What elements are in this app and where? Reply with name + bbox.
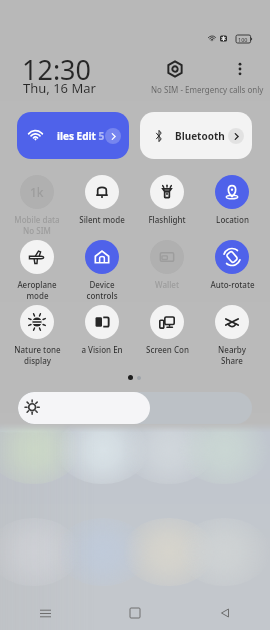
button[interactable]: Wallet: [135, 240, 199, 290]
staticText: Device: [89, 279, 115, 290]
staticText: controls: [86, 290, 118, 301]
staticText: 1k: [30, 184, 44, 200]
button[interactable]: Settings: [163, 57, 187, 81]
staticText: 100: [238, 36, 248, 43]
button[interactable]: Nearby: [200, 305, 264, 366]
staticText: Flashlight: [148, 214, 186, 225]
staticText: 5: [96, 129, 105, 143]
button[interactable]: Recents: [0, 596, 90, 630]
button[interactable]: Flashlight: [135, 175, 199, 225]
staticText: Mobile data: [14, 214, 60, 225]
button[interactable]: iles Edit: [17, 112, 129, 159]
staticText: No SIM - Emergency calls only: [151, 84, 264, 95]
button[interactable]: Silent mode: [70, 175, 134, 225]
button[interactable]: Aeroplane: [5, 240, 69, 301]
button[interactable]: Screen Con: [135, 305, 199, 355]
staticText: Auto-rotate: [210, 279, 255, 290]
button[interactable]: a Vision En: [70, 305, 134, 355]
button[interactable]: Nature tone: [5, 305, 69, 366]
staticText: iles Edit: [57, 129, 96, 143]
staticText: Screen Con: [146, 344, 189, 355]
staticText: Aeroplane: [17, 279, 57, 290]
button[interactable]: Home: [90, 596, 180, 630]
button[interactable]: Back: [180, 596, 270, 630]
button[interactable]: Auto-rotate: [200, 240, 264, 290]
staticText: Bluetooth: [175, 129, 225, 143]
button[interactable]: Bluetooth: [140, 112, 252, 159]
staticText: Thu, 16 Mar: [23, 79, 96, 97]
staticText: Share: [221, 355, 243, 366]
staticText: Nature tone: [14, 344, 61, 355]
staticText: Nearby: [218, 344, 246, 355]
staticText: Location: [216, 214, 249, 225]
staticText: Wallet: [155, 279, 179, 290]
staticText: No SIM: [23, 225, 51, 236]
staticText: 12:30: [22, 51, 92, 88]
button[interactable]: Location: [200, 175, 264, 225]
button[interactable]: 1k: [5, 175, 69, 236]
staticText: Silent mode: [79, 214, 125, 225]
button[interactable]: Brightness: [18, 392, 252, 424]
staticText: a Vision En: [81, 344, 123, 355]
button[interactable]: Device: [70, 240, 134, 301]
staticText: mode: [26, 290, 49, 301]
button[interactable]: More options: [228, 57, 252, 81]
staticText: display: [24, 355, 51, 366]
